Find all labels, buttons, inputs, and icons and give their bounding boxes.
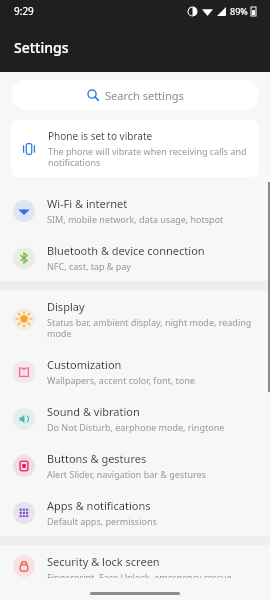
staticText: 9:29 xyxy=(14,4,34,18)
staticText: Buttons & gestures xyxy=(47,451,147,466)
staticText: Default apps, permissions xyxy=(47,515,157,527)
staticText: Settings xyxy=(14,38,69,57)
staticText: Apps & notifications xyxy=(47,498,151,513)
button[interactable]: Customization xyxy=(0,348,270,395)
button[interactable]: Display xyxy=(0,290,270,348)
staticText: Fingerprint, Face Unlock, emergency resc… xyxy=(47,571,232,578)
staticText: The phone will vibrate when receiving ca… xyxy=(48,145,249,168)
staticText: Customization xyxy=(47,357,122,372)
staticText: Alert Slider, navigation bar & gestures xyxy=(47,468,206,480)
button[interactable]: Wi-Fi & internet xyxy=(0,187,270,234)
staticText: Sound & vibration xyxy=(47,404,140,419)
staticText: Do Not Disturb, earphone mode, ringtone xyxy=(47,421,225,433)
staticText: Search settings xyxy=(105,88,184,103)
staticText: Wallpapers, accent color, font, tone xyxy=(47,374,195,386)
button[interactable]: Search settings xyxy=(11,80,259,110)
button[interactable]: Bluetooth & device connection xyxy=(0,234,270,281)
button[interactable]: Sound & vibration xyxy=(0,395,270,442)
button[interactable]: Buttons & gestures xyxy=(0,442,270,489)
staticText: Bluetooth & device connection xyxy=(47,243,205,258)
staticText: Security & lock screen xyxy=(47,554,160,569)
button[interactable]: Phone is set to vibrate xyxy=(11,120,259,177)
staticText: Phone is set to vibrate xyxy=(48,129,153,143)
staticText: SIM, mobile network, data usage, hotspot xyxy=(47,213,224,225)
button[interactable]: Security & lock screen xyxy=(0,545,270,587)
staticText: Status bar, ambient display, night mode,… xyxy=(47,316,260,339)
button[interactable]: Apps & notifications xyxy=(0,489,270,536)
staticText: Wi-Fi & internet xyxy=(47,196,128,211)
staticText: 89% xyxy=(230,5,248,17)
staticText: NFC, cast, tap & pay xyxy=(47,260,131,272)
staticText: Display xyxy=(47,299,85,314)
